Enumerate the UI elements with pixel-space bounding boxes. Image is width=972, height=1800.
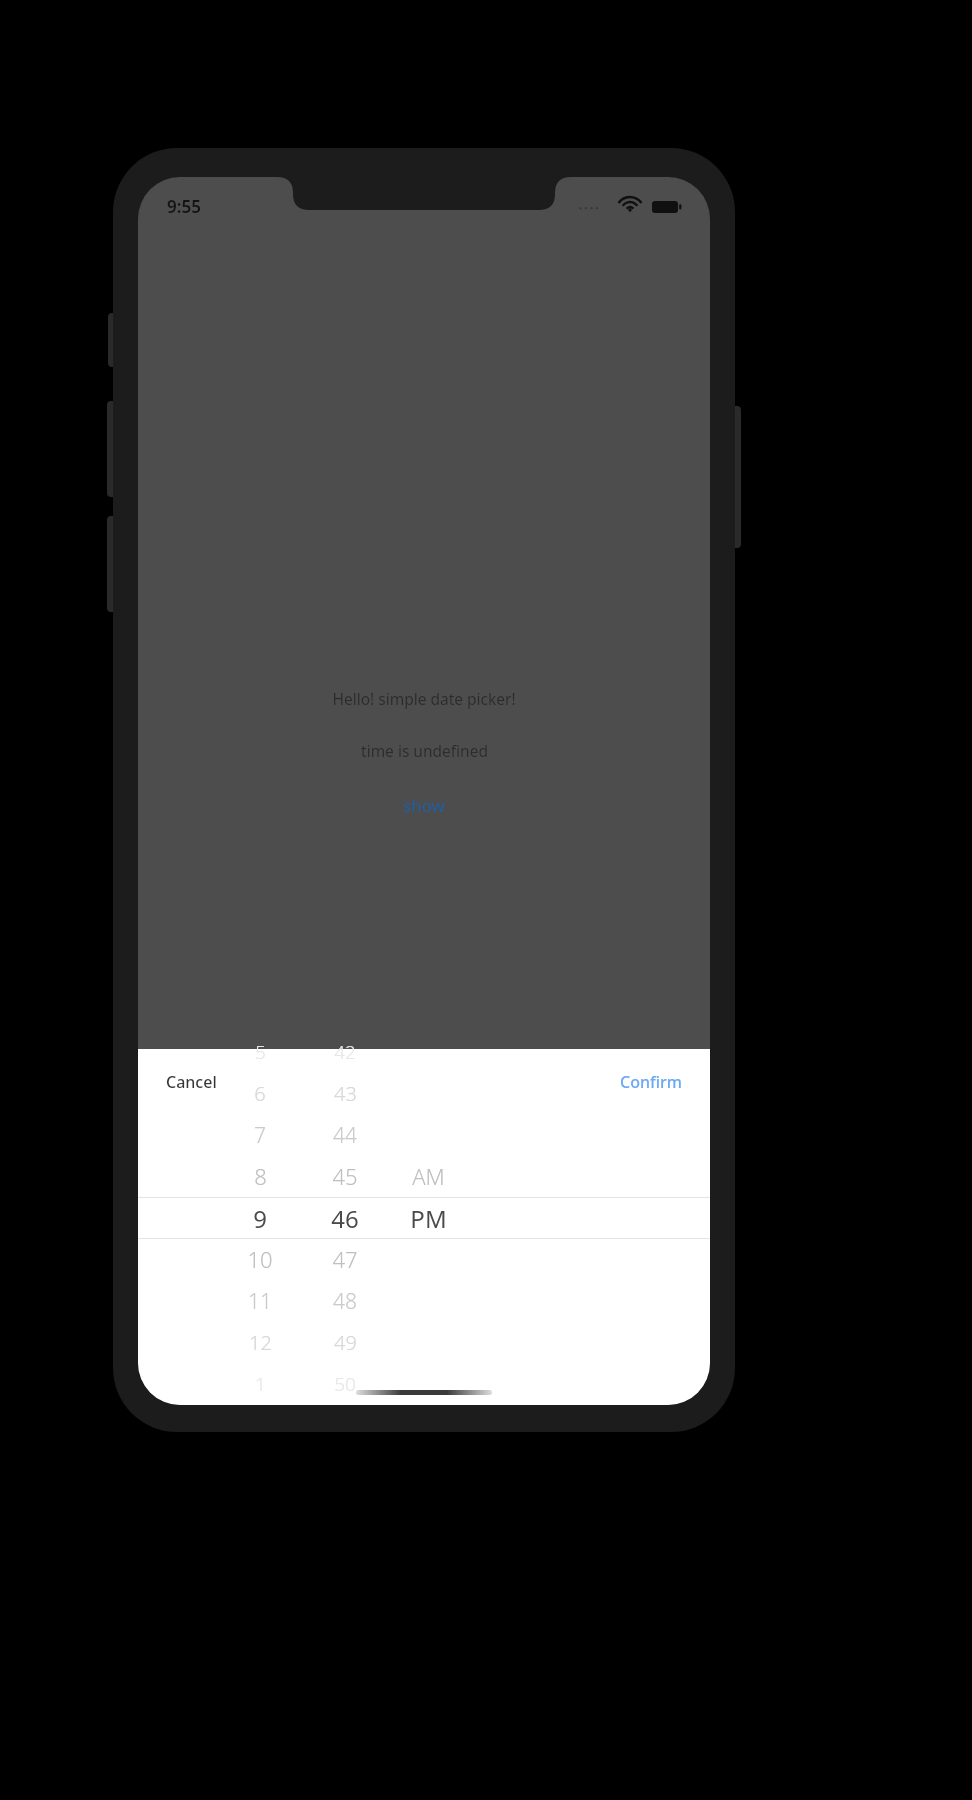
staticText: 43 — [334, 1080, 357, 1107]
staticText: 48 — [333, 1287, 357, 1316]
staticText: 6 — [254, 1080, 266, 1107]
button[interactable]: 12 — [210, 1324, 310, 1360]
button[interactable]: 11 — [210, 1283, 310, 1319]
staticText: 12 — [249, 1329, 272, 1356]
button[interactable]: 43 — [295, 1075, 395, 1111]
staticText: 50 — [334, 1371, 356, 1397]
staticText: 10 — [247, 1244, 273, 1274]
staticText: 44 — [333, 1121, 357, 1150]
button[interactable]: 50 — [295, 1366, 395, 1402]
button[interactable]: 48 — [295, 1283, 395, 1319]
staticText: Hello! simple date picker! — [332, 688, 516, 709]
staticText: 7 — [254, 1121, 266, 1150]
button[interactable]: 42 — [295, 1034, 395, 1070]
button[interactable]: 45 — [295, 1158, 395, 1194]
button[interactable]: 5 — [210, 1034, 310, 1070]
staticText: time is undefined — [361, 740, 488, 761]
button[interactable]: show — [393, 787, 455, 824]
staticText: PM — [410, 1202, 447, 1235]
button[interactable]: 47 — [295, 1241, 395, 1277]
button[interactable]: Cancel — [156, 1063, 227, 1101]
staticText: Cancel — [166, 1071, 217, 1093]
staticText: Confirm — [620, 1071, 682, 1093]
staticText: AM — [412, 1161, 445, 1191]
staticText: 49 — [334, 1329, 357, 1356]
button[interactable]: Confirm — [610, 1063, 692, 1101]
button[interactable]: 49 — [295, 1324, 395, 1360]
staticText: 47 — [332, 1244, 358, 1274]
button[interactable]: 44 — [295, 1117, 395, 1153]
staticText: 46 — [331, 1202, 359, 1235]
button[interactable]: AM — [378, 1158, 478, 1194]
staticText: 9 — [253, 1202, 267, 1235]
button[interactable]: 10 — [210, 1241, 310, 1277]
staticText: 45 — [332, 1161, 358, 1191]
button[interactable]: 7 — [210, 1117, 310, 1153]
button[interactable]: 6 — [210, 1075, 310, 1111]
button[interactable]: 9 — [210, 1200, 310, 1236]
button[interactable]: 8 — [210, 1158, 310, 1194]
button[interactable]: PM — [378, 1200, 478, 1236]
button[interactable]: 46 — [295, 1200, 395, 1236]
staticText: 9:55 — [167, 195, 201, 218]
staticText: 8 — [254, 1161, 267, 1191]
staticText: 42 — [334, 1039, 356, 1065]
staticText: 1 — [255, 1371, 266, 1397]
staticText: 11 — [248, 1287, 272, 1316]
staticText: show — [403, 794, 445, 817]
staticText: 5 — [255, 1039, 266, 1065]
